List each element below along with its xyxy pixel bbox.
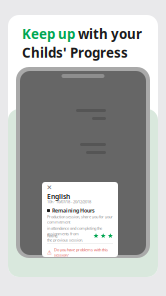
staticText: the previous session. — [47, 237, 83, 242]
staticText: in attendance and completing the assignm… — [47, 226, 102, 236]
staticText: Do you have problems with this session? — [54, 247, 108, 258]
staticText: Remaining Hours — [52, 207, 95, 214]
staticText: Production session, share you for your c… — [47, 214, 113, 225]
staticText: Childs' Progress — [22, 44, 128, 61]
button[interactable]: Close — [45, 183, 54, 192]
staticText: 10h · 10/07/18 - 20/12/2018 — [47, 199, 91, 204]
staticText: with your — [78, 25, 142, 43]
staticText: Rating — [47, 233, 57, 238]
staticText: Keep up — [22, 25, 75, 43]
staticText: ⚠ — [47, 249, 52, 255]
button[interactable]: ⚠ — [47, 247, 108, 258]
staticText: ✕ — [46, 184, 52, 191]
staticText: English — [47, 192, 70, 201]
